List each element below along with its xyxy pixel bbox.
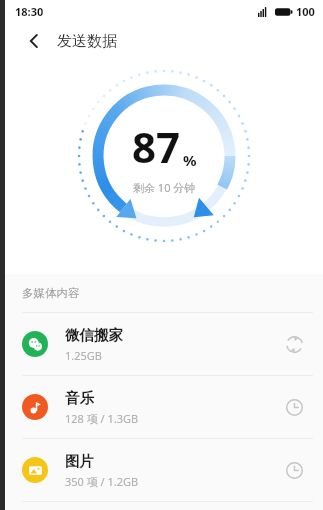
staticText: 18:30: [15, 4, 44, 19]
staticText: 多媒体内容: [22, 286, 80, 300]
button[interactable]: 图片: [5, 439, 323, 501]
staticText: 128 项 / 1.3GB: [65, 411, 139, 426]
button[interactable]: Pending: [279, 455, 309, 485]
staticText: 微信搬家: [65, 326, 123, 344]
button[interactable]: 微信搬家: [5, 313, 323, 375]
staticText: 剩余 10 分钟: [133, 180, 196, 195]
staticText: 音乐: [65, 389, 94, 407]
staticText: 87: [132, 118, 181, 175]
staticText: 100: [296, 4, 315, 19]
staticText: 发送数据: [57, 32, 117, 51]
button[interactable]: Back: [19, 26, 49, 56]
button[interactable]: 音乐: [5, 376, 323, 438]
staticText: %: [183, 150, 197, 170]
staticText: 350 项 / 1.2GB: [65, 474, 139, 489]
staticText: 图片: [65, 452, 94, 470]
button[interactable]: Pending: [279, 392, 309, 422]
staticText: 1.25GB: [65, 348, 102, 363]
button[interactable]: Refresh: [279, 329, 309, 359]
